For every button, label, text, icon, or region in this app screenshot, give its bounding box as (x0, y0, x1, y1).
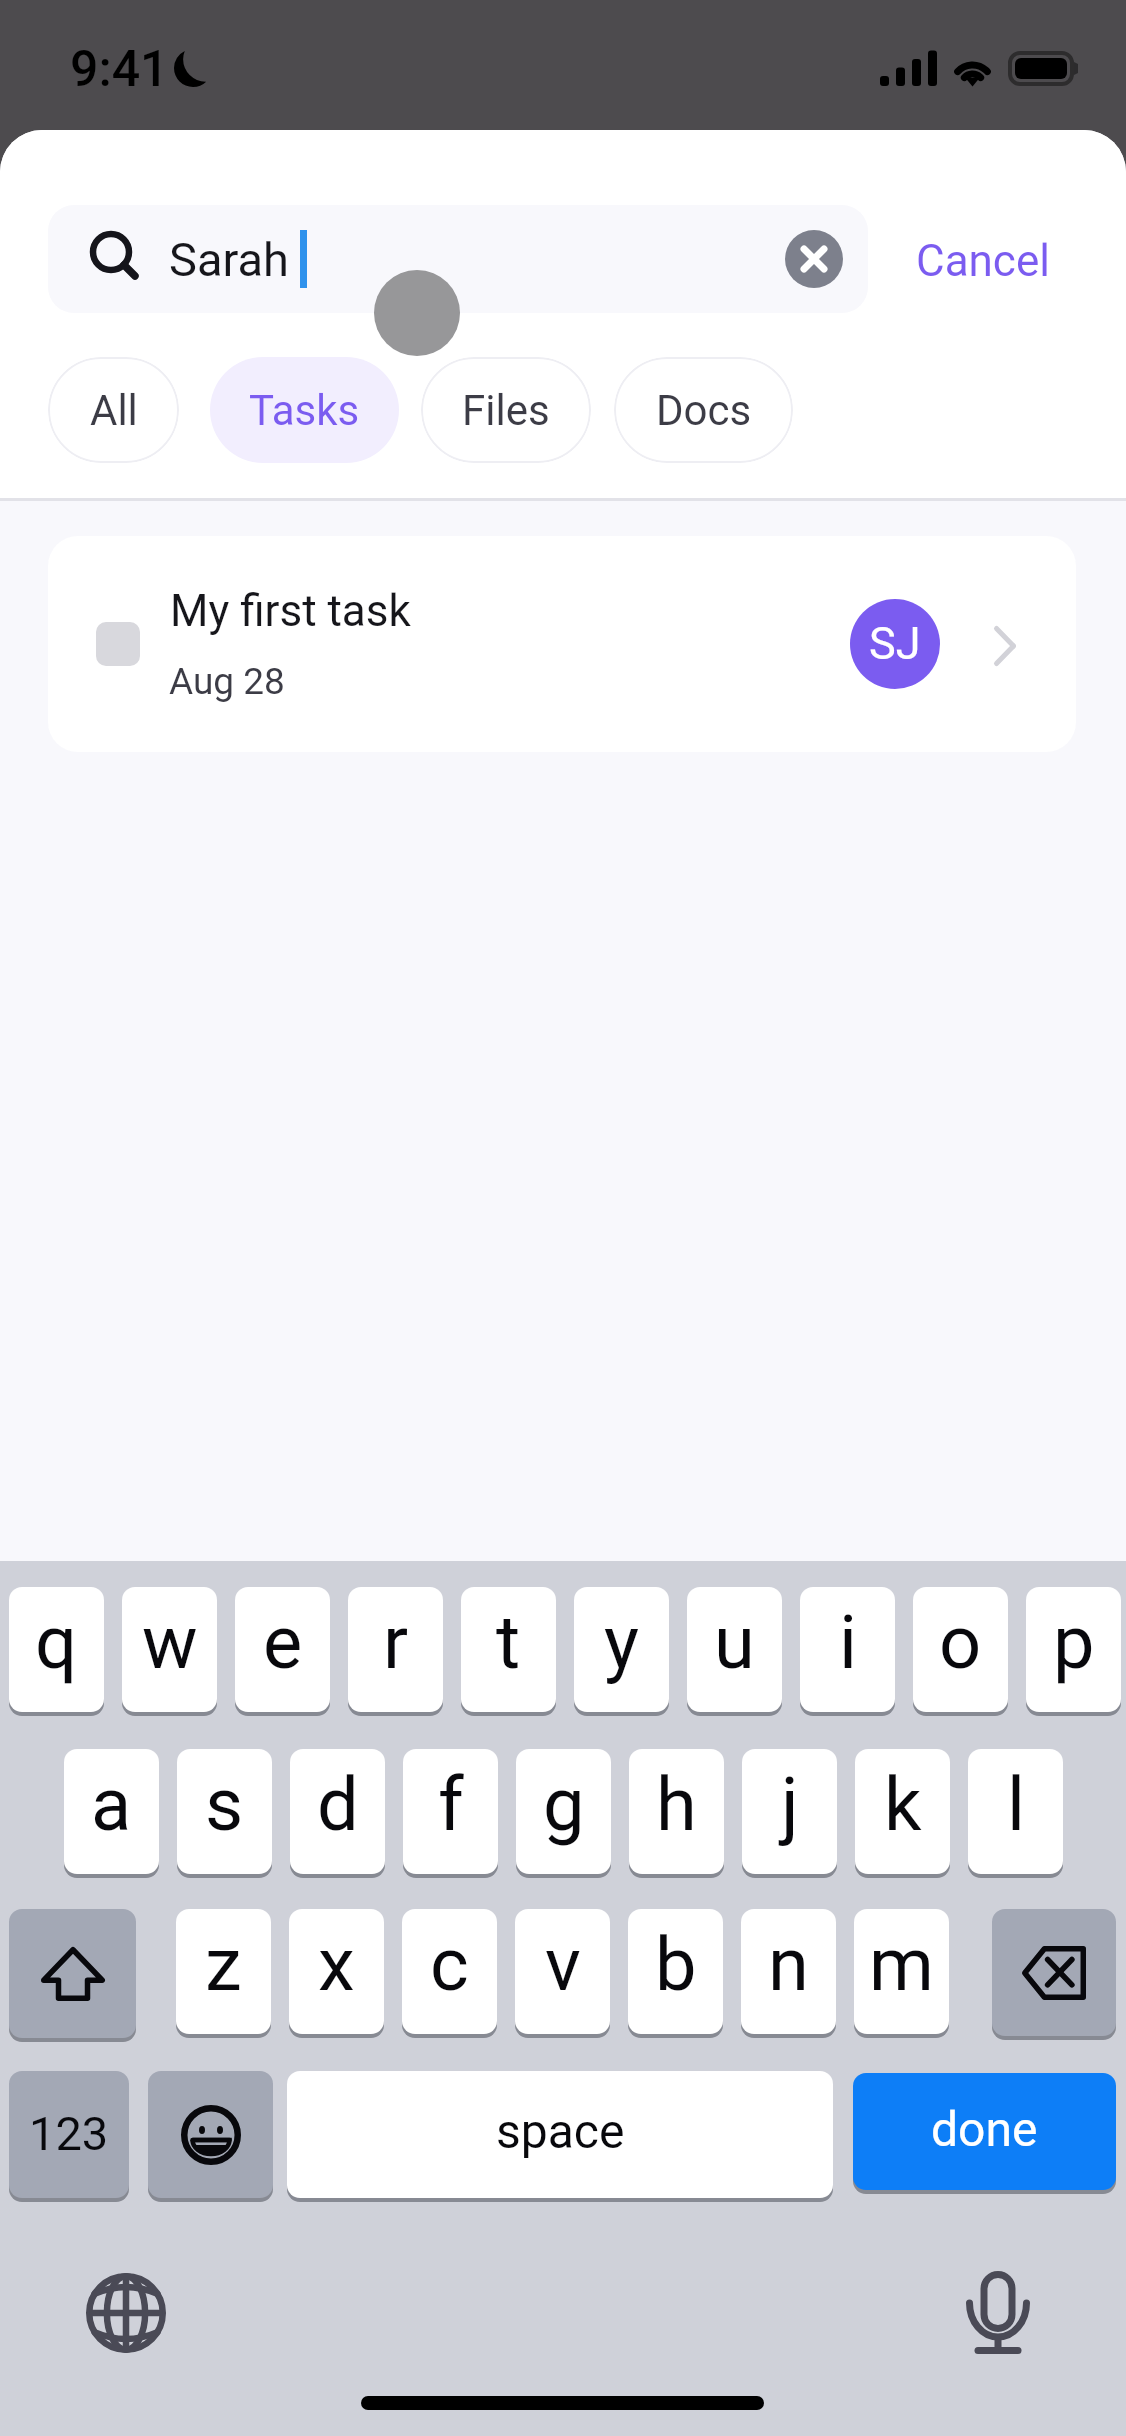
button[interactable]: d (290, 1749, 385, 1874)
button[interactable]: g (516, 1749, 611, 1874)
button[interactable] (148, 2071, 273, 2198)
button[interactable]: l (968, 1749, 1063, 1874)
staticText: m (869, 1921, 934, 2008)
button[interactable]: z (176, 1909, 271, 2034)
staticText: i (839, 1599, 857, 1686)
button[interactable]: m (854, 1909, 949, 2034)
button[interactable]: a (64, 1749, 159, 1874)
button[interactable]: e (235, 1587, 330, 1712)
button[interactable]: y (574, 1587, 669, 1712)
staticText: Docs (656, 386, 752, 435)
other: Shift (41, 1947, 105, 2001)
staticText: 9:41 (70, 40, 169, 99)
button[interactable]: Toggle task complete (48, 536, 1076, 752)
staticText: space (496, 2103, 625, 2159)
button[interactable]: space (287, 2071, 833, 2198)
staticText: 123 (29, 2106, 109, 2161)
button[interactable]: c (402, 1909, 497, 2034)
button[interactable]: Dictate (961, 2271, 1035, 2357)
button[interactable]: Sarah (48, 205, 868, 313)
staticText: z (205, 1921, 242, 2008)
button[interactable]: k (855, 1749, 950, 1874)
other: Backspace (1022, 1946, 1086, 2000)
staticText: n (768, 1921, 809, 2008)
button[interactable]: p (1026, 1587, 1121, 1712)
staticText: Cancel (916, 235, 1050, 287)
staticText: Sarah (169, 232, 289, 287)
button[interactable]: s (177, 1749, 272, 1874)
staticText: My first task (170, 585, 411, 637)
button[interactable]: Docs (614, 357, 793, 463)
staticText: All (90, 386, 138, 435)
button[interactable]: u (687, 1587, 782, 1712)
staticText: j (781, 1761, 799, 1848)
button[interactable]: done (853, 2073, 1116, 2190)
staticText: p (1053, 1599, 1095, 1686)
staticText: x (318, 1921, 355, 2008)
staticText: h (656, 1761, 697, 1848)
button[interactable]: Tasks (210, 357, 399, 463)
staticText: SJ (869, 617, 921, 670)
button[interactable]: q (9, 1587, 104, 1712)
staticText: b (655, 1921, 697, 2008)
button[interactable]: Change keyboard (86, 2273, 166, 2353)
staticText: r (383, 1599, 409, 1686)
button[interactable]: n (741, 1909, 836, 2034)
staticText: c (430, 1921, 469, 2008)
staticText: Files (462, 386, 550, 435)
button[interactable]: Clear search (785, 230, 843, 288)
staticText: v (545, 1921, 581, 2008)
button[interactable]: Toggle task complete (96, 622, 140, 666)
button[interactable]: Cancel (897, 217, 1069, 305)
button[interactable]: x (289, 1909, 384, 2034)
button[interactable]: v (515, 1909, 610, 2034)
button[interactable]: Backspace (992, 1909, 1116, 2036)
staticText: w (142, 1599, 198, 1686)
button[interactable]: r (348, 1587, 443, 1712)
staticText: g (543, 1761, 585, 1848)
button[interactable]: o (913, 1587, 1008, 1712)
button[interactable]: f (403, 1749, 498, 1874)
staticText: s (205, 1761, 244, 1848)
staticText: o (939, 1599, 982, 1686)
button[interactable]: Files (421, 357, 591, 463)
staticText: e (263, 1599, 303, 1686)
button[interactable]: j (742, 1749, 837, 1874)
staticText: y (604, 1599, 640, 1686)
staticText: done (931, 2101, 1038, 2157)
staticText: Tasks (249, 386, 360, 435)
button[interactable]: h (629, 1749, 724, 1874)
staticText: q (35, 1599, 78, 1686)
staticText: k (884, 1761, 922, 1848)
staticText: t (496, 1599, 521, 1686)
button[interactable]: t (461, 1587, 556, 1712)
staticText: d (317, 1761, 359, 1848)
button[interactable]: All (48, 357, 179, 463)
button[interactable]: Shift (9, 1909, 136, 2038)
button[interactable]: 123 (9, 2071, 129, 2198)
staticText: Aug 28 (169, 660, 285, 703)
button[interactable]: b (628, 1909, 723, 2034)
staticText: a (91, 1761, 132, 1848)
staticText: l (1007, 1761, 1025, 1848)
button[interactable]: i (800, 1587, 895, 1712)
staticText: f (438, 1761, 464, 1848)
staticText: u (714, 1599, 755, 1686)
button[interactable]: w (122, 1587, 217, 1712)
